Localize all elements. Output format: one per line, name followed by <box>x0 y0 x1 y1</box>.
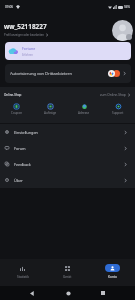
button[interactable]: Über <box>0 172 135 188</box>
button[interactable]: Konto <box>90 259 135 286</box>
staticText: Erfahren <box>22 53 33 57</box>
staticText: Fortune <box>22 46 36 51</box>
staticText: Statistik <box>17 275 29 279</box>
staticText: Profil anzeigen oder bearbeiten <box>4 33 44 37</box>
other: Zurück <box>30 291 35 296</box>
button[interactable]: Autorisierung von Drittanbietern <box>5 64 131 83</box>
button[interactable]: Einstellungen <box>0 124 135 140</box>
button[interactable]: Statistik <box>0 259 45 286</box>
button[interactable]: Feedback <box>0 156 135 172</box>
staticText: Autorisierung von Drittanbietern <box>10 71 72 77</box>
staticText: Feedback <box>14 162 31 167</box>
staticText: Aufträge <box>44 111 57 115</box>
staticText: Support <box>112 111 124 115</box>
staticText: Konto <box>108 275 117 279</box>
staticText: 09:06 <box>5 5 14 9</box>
staticText: Einstellungen <box>14 130 38 135</box>
staticText: Adresse <box>78 111 90 115</box>
staticText: Online-Shop <box>4 93 22 97</box>
button[interactable]: Fortune <box>5 42 131 60</box>
button[interactable]: Adresse <box>67 103 101 115</box>
button[interactable]: Aufträge <box>33 103 67 115</box>
staticText: zum Online-Shop <box>100 93 126 97</box>
button[interactable]: zum Online-Shop <box>100 93 131 97</box>
staticText: Forum <box>14 146 26 151</box>
staticText: ww_52118227 <box>4 22 47 31</box>
button[interactable]: Profil anzeigen oder bearbeiten <box>4 33 49 37</box>
button[interactable]: Coupon <box>0 103 33 115</box>
button[interactable]: Support <box>101 103 135 115</box>
staticText: Über <box>14 178 23 183</box>
staticText: 94% <box>124 5 130 9</box>
button[interactable]: Gerät <box>45 259 90 286</box>
button[interactable]: Forum <box>0 140 135 156</box>
other: Home <box>66 291 71 296</box>
button[interactable]: Profilbild <box>112 20 133 41</box>
staticText: Coupon <box>11 111 23 115</box>
staticText: Gerät <box>63 275 72 279</box>
